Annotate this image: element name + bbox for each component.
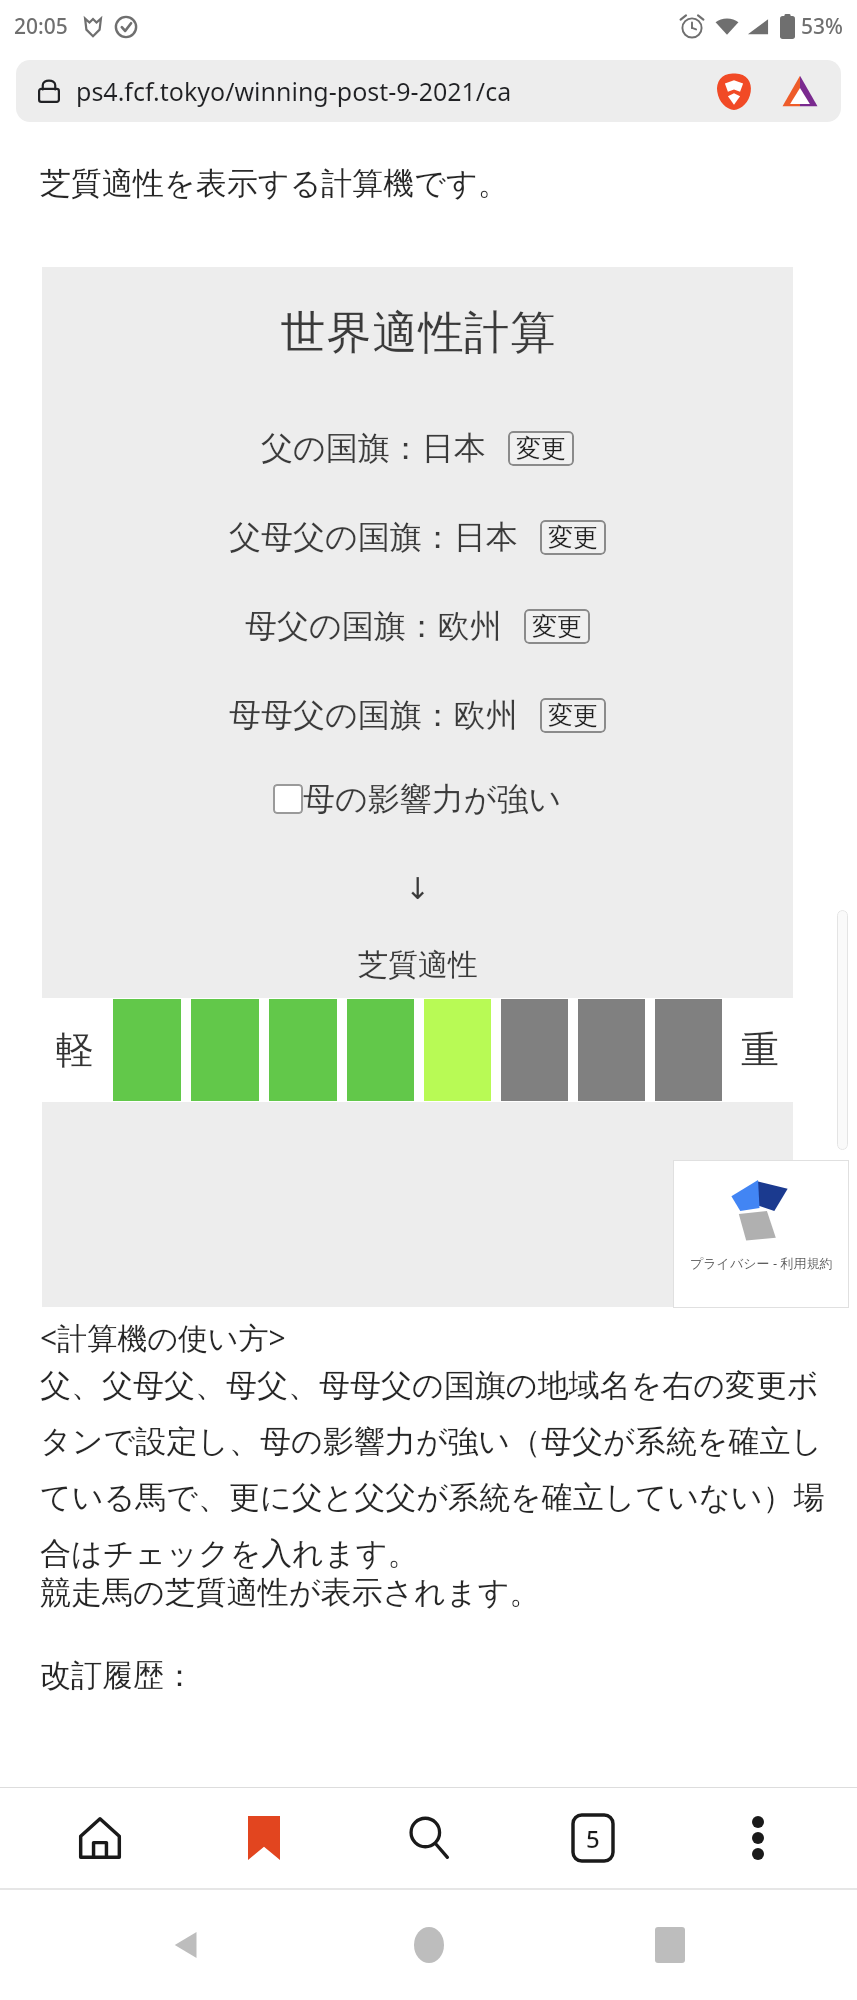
button[interactable]: Recent apps: [615, 1890, 725, 2000]
button[interactable]: Brave Shields: [713, 70, 755, 112]
button[interactable]: Tabs: [528, 1790, 658, 1886]
staticText: 母父の国旗：欧州: [245, 606, 502, 646]
button[interactable]: More options: [693, 1790, 823, 1886]
staticText: 競走馬の芝質適性が表示されます。: [40, 1573, 541, 1612]
staticText: ↓: [405, 871, 431, 906]
staticText: 母の影響力が強い: [303, 779, 562, 819]
staticText: 芝質適性を表示する計算機です。: [40, 164, 509, 203]
staticText: 20:05: [14, 12, 68, 41]
staticText: ps4.fcf.tokyo/winning-post-9-2021/ca: [76, 74, 512, 108]
staticText: 母母父の国旗：欧州: [229, 695, 518, 735]
button[interactable]: Home: [374, 1890, 484, 2000]
staticText: プライバシー - 利用規約: [690, 1254, 833, 1272]
staticText: 変更: [548, 522, 598, 553]
button[interactable]: Home: [35, 1790, 165, 1886]
button[interactable]: 変更: [508, 431, 574, 466]
button[interactable]: 母の影響力が強い: [273, 779, 562, 819]
staticText: 父母父の国旗：日本: [229, 517, 518, 557]
staticText: 改訂履歴：: [40, 1656, 195, 1695]
staticText: 芝質適性: [358, 946, 478, 984]
staticText: 重: [741, 1026, 779, 1074]
button[interactable]: Brave Rewards: [779, 70, 821, 112]
button[interactable]: Bookmarks: [199, 1790, 329, 1886]
staticText: 父の国旗：日本: [261, 428, 486, 468]
button[interactable]: Back: [132, 1890, 242, 2000]
staticText: 変更: [516, 433, 566, 464]
button[interactable]: ps4.fcf.tokyo/winning-post-9-2021/ca: [16, 60, 841, 122]
button[interactable]: 変更: [540, 698, 606, 733]
button[interactable]: Search: [364, 1790, 494, 1886]
staticText: 53%: [801, 12, 843, 41]
staticText: 5: [586, 1822, 600, 1855]
button[interactable]: 変更: [524, 609, 590, 644]
staticText: <計算機の使い方>: [40, 1317, 286, 1358]
staticText: 変更: [532, 611, 582, 642]
staticText: 世界適性計算: [280, 305, 556, 362]
staticText: 父、父母父、母父、母母父の国旗の地域名を右の変更ボタンで設定し、母の影響力が強い…: [40, 1366, 833, 1573]
button[interactable]: 変更: [540, 520, 606, 555]
staticText: 変更: [548, 700, 598, 731]
staticText: 軽: [56, 1026, 94, 1074]
